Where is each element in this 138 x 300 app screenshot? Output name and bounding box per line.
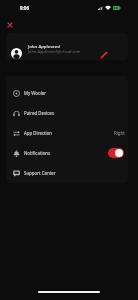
button[interactable]: Notifications toggle	[108, 148, 124, 158]
staticText: Notifications	[24, 150, 51, 156]
staticText: John.Appleseed@icloud.com	[28, 49, 81, 54]
button[interactable]: Paired Devices	[6, 103, 128, 123]
button[interactable]: My Wooler	[6, 83, 128, 103]
staticText: App Direction	[24, 130, 53, 136]
button[interactable]: Support Center	[6, 163, 128, 183]
button[interactable]: Close	[3, 18, 17, 32]
staticText: Paired Devices	[24, 110, 54, 116]
button[interactable]: Edit profile	[98, 49, 110, 60]
staticText: 9:06	[20, 5, 29, 11]
button[interactable]: John Appleseed	[6, 33, 128, 60]
staticText: Support Center	[24, 170, 56, 176]
staticText: My Wooler	[24, 90, 47, 96]
button[interactable]: Notifications	[6, 143, 128, 163]
staticText: John Appleseed	[28, 43, 60, 49]
button[interactable]: App Direction	[6, 123, 128, 143]
staticText: Right	[114, 130, 125, 136]
